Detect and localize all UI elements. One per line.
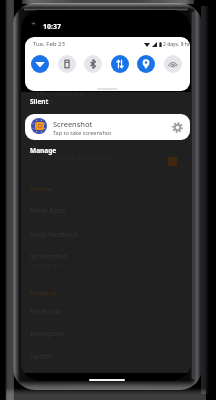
staticText: Instagram xyxy=(30,329,65,339)
button[interactable]: Quick setting toggle xyxy=(58,55,76,73)
staticText: Off xyxy=(45,97,54,105)
staticText: Manage xyxy=(30,146,57,155)
staticText: Screenshot xyxy=(53,119,93,129)
button[interactable]: Quick setting toggle xyxy=(31,55,49,73)
button[interactable]: Quick setting toggle xyxy=(111,55,129,73)
staticText: Screenshot xyxy=(30,252,67,262)
staticText: Tue, Feb 23 xyxy=(33,40,65,48)
staticText: Facebook xyxy=(30,307,62,317)
staticText: Tap to take screenshot xyxy=(42,153,111,162)
button[interactable]: Notification settings xyxy=(171,121,184,134)
staticText: Twitter xyxy=(30,352,53,362)
staticText: Send feedback xyxy=(30,230,79,240)
staticText: More Apps xyxy=(30,206,66,216)
staticText: 10:37 xyxy=(43,22,61,32)
button[interactable]: Quick setting toggle xyxy=(137,55,155,73)
staticText: Tap to take screenshot xyxy=(53,129,112,136)
staticText: 2 days, 8 hr xyxy=(163,41,190,48)
button[interactable]: Screenshot xyxy=(25,114,190,140)
button[interactable]: Quick setting toggle xyxy=(84,55,102,73)
staticText: Show status bar xyxy=(36,89,85,98)
staticText: General xyxy=(30,185,53,193)
staticText: Silent xyxy=(30,97,49,106)
staticText: Follow us xyxy=(30,289,57,297)
button[interactable]: Quick setting toggle xyxy=(164,55,182,73)
